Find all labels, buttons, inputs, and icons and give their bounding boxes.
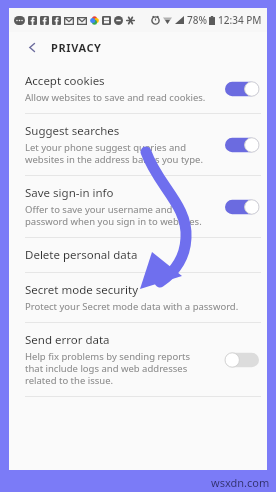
staticText: 12:34 PM (218, 13, 262, 27)
staticText: Secret mode security (25, 282, 139, 298)
staticText: Suggest searches (25, 123, 120, 139)
button[interactable]: Suggest searches (9, 114, 267, 175)
staticText: Delete personal data (25, 247, 138, 263)
button[interactable]: Secret mode security (9, 273, 267, 322)
button[interactable]: Save sign-in info (9, 176, 267, 237)
button[interactable]: Delete personal data (9, 238, 267, 272)
staticText: PRIVACY (51, 40, 102, 55)
staticText: Send error data (25, 332, 110, 348)
staticText: wsxdn.com (211, 475, 270, 490)
staticText: Help fix problems by sending reports tha… (25, 350, 191, 387)
staticText: 78% (187, 13, 207, 27)
button[interactable]: Accept cookies (9, 64, 267, 113)
button[interactable]: Toggle on (225, 80, 259, 98)
staticText: Save sign-in info (25, 185, 114, 201)
staticText: Accept cookies (25, 73, 105, 89)
button[interactable]: Back (21, 36, 43, 58)
staticText: Protect your Secret mode data with a pas… (25, 300, 239, 313)
staticText: Allow websites to save and read cookies. (25, 91, 206, 104)
button[interactable]: Send error data (9, 323, 267, 396)
button[interactable]: Toggle on (225, 136, 259, 154)
button[interactable]: Toggle on (225, 198, 259, 216)
button[interactable]: Toggle off (225, 351, 259, 369)
staticText: Offer to save your username and password… (25, 203, 202, 228)
staticText: Let your phone suggest queries and websi… (25, 141, 203, 166)
